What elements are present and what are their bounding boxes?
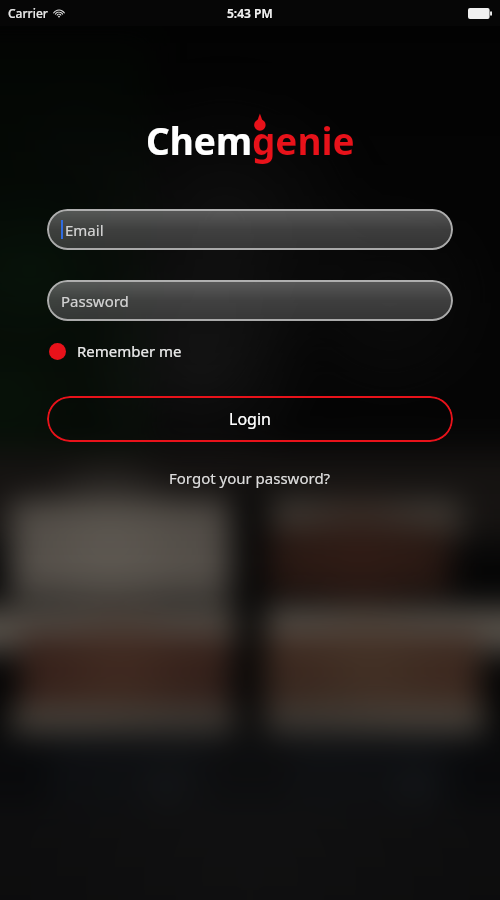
staticText: Chemgenie bbox=[146, 115, 355, 165]
staticText: Carrier bbox=[8, 5, 48, 21]
staticText: Password bbox=[61, 291, 129, 311]
staticText: Email bbox=[65, 220, 104, 240]
button[interactable]: Password bbox=[47, 280, 453, 321]
staticText: Remember me bbox=[77, 341, 182, 361]
button[interactable]: Forgot your password? bbox=[163, 462, 337, 494]
staticText: Login bbox=[229, 408, 271, 430]
button[interactable]: Remember me bbox=[47, 338, 184, 364]
button[interactable]: Login bbox=[47, 396, 453, 442]
staticText: 5:43 PM bbox=[227, 5, 273, 21]
button[interactable]: Email bbox=[47, 209, 453, 250]
